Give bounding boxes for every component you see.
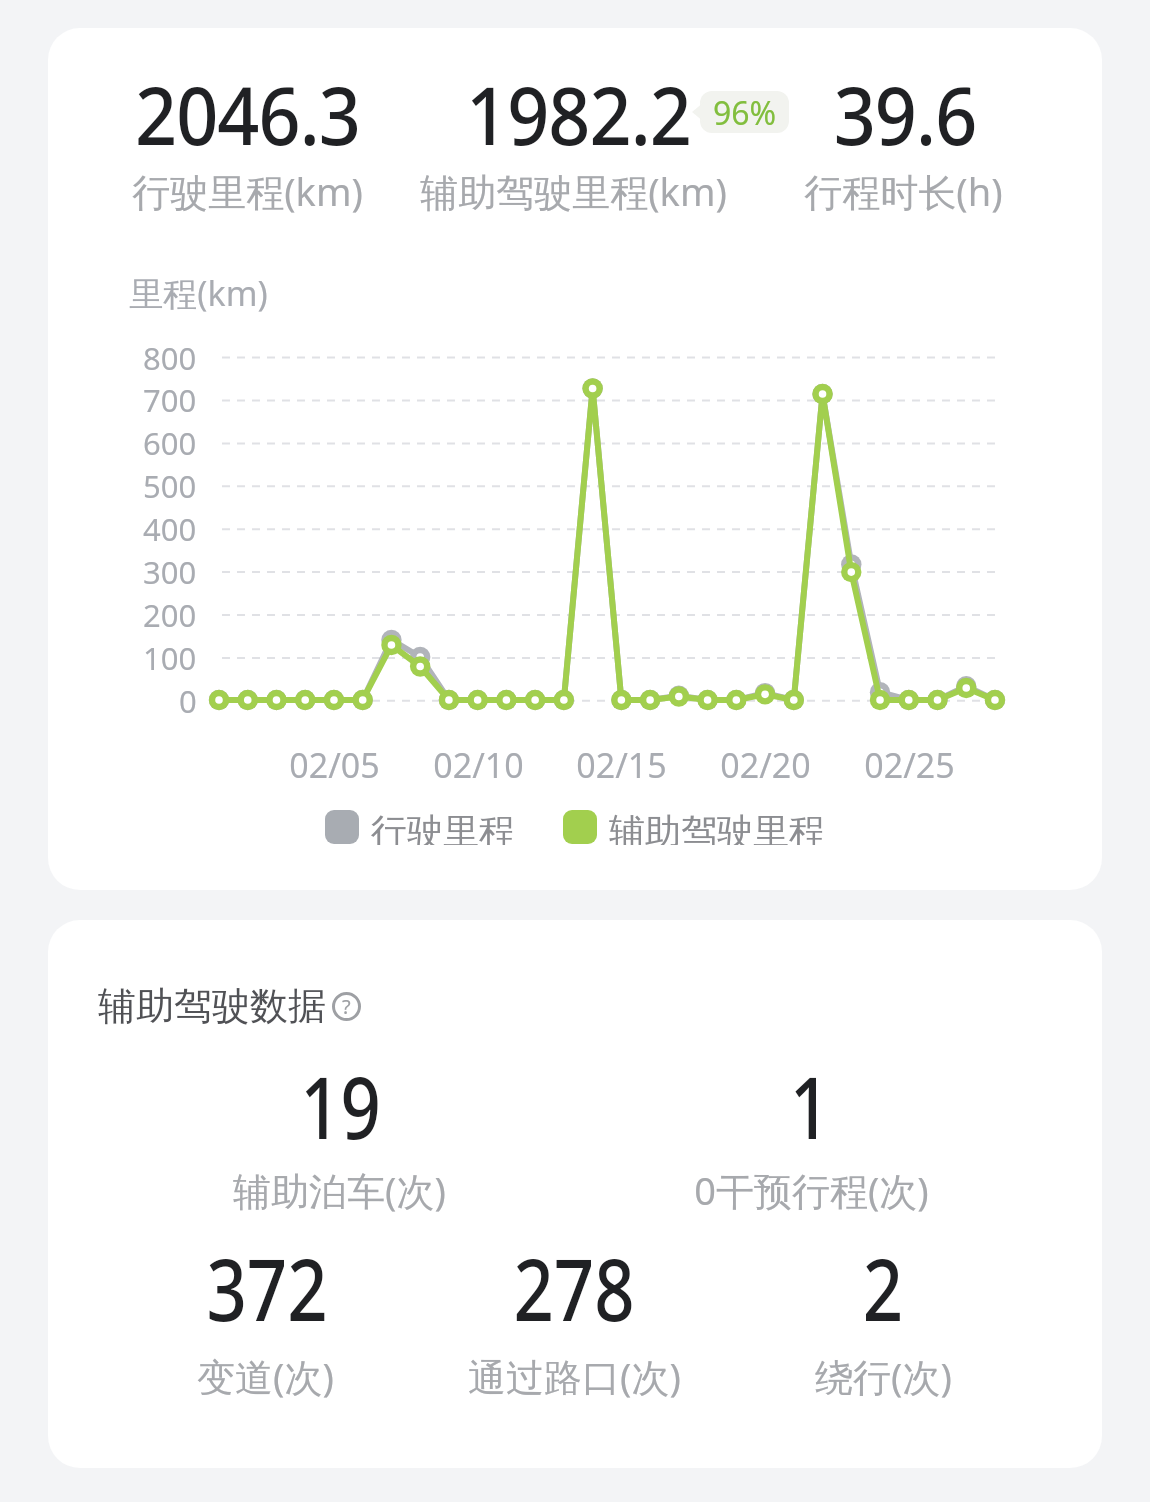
staticText: 变道(次)	[197, 1350, 334, 1402]
staticText: 372	[206, 1229, 328, 1346]
staticText: 600	[143, 422, 197, 464]
staticText: 0干预行程(次)	[694, 1164, 929, 1216]
staticText: 2046.3	[135, 59, 360, 168]
staticText: 96%	[713, 91, 777, 133]
staticText: 绕行(次)	[815, 1350, 952, 1402]
button[interactable]	[563, 810, 597, 844]
staticText: 500	[143, 465, 197, 507]
staticText: 800	[143, 337, 197, 379]
staticText: 19	[300, 1047, 381, 1164]
staticText: 2	[862, 1229, 903, 1346]
button[interactable]: ?	[332, 992, 361, 1021]
staticText: 02/25	[864, 742, 955, 788]
staticText: 辅助泊车(次)	[233, 1164, 446, 1216]
staticText: 02/10	[433, 742, 524, 788]
staticText: 39.6	[833, 59, 977, 168]
staticText: 辅助驾驶数据	[98, 982, 326, 1030]
staticText: 1	[789, 1047, 830, 1164]
staticText: 通过路口(次)	[468, 1350, 681, 1402]
staticText: 辅助驾驶里程	[609, 809, 825, 845]
staticText: 里程(km)	[129, 270, 268, 316]
staticText: 300	[143, 551, 197, 593]
staticText: 行驶里程	[371, 809, 515, 845]
staticText: 辅助驾驶里程(km)	[420, 165, 727, 217]
button[interactable]: 辅助驾驶数据	[48, 920, 1102, 1468]
staticText: 02/20	[720, 742, 811, 788]
staticText: 700	[143, 379, 197, 421]
staticText: 02/05	[289, 742, 380, 788]
staticText: 400	[143, 508, 197, 550]
staticText: 行驶里程(km)	[132, 165, 363, 217]
staticText: 278	[513, 1229, 635, 1346]
staticText: 100	[143, 637, 197, 679]
staticText: 行程时长(h)	[804, 165, 1003, 217]
button[interactable]: 2046.3	[48, 28, 1102, 890]
staticText: 200	[143, 594, 197, 636]
button[interactable]	[325, 810, 359, 844]
staticText: 1982.2	[466, 59, 691, 168]
staticText: ?	[342, 993, 351, 1020]
staticText: 0	[179, 680, 197, 722]
staticText: 02/15	[576, 742, 667, 788]
